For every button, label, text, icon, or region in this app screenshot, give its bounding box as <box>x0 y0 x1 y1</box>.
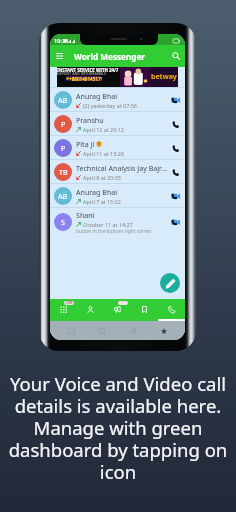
button[interactable]: Contacts <box>77 299 104 321</box>
staticText: April 12 at 20:12 <box>83 126 124 133</box>
button[interactable]: P <box>50 112 185 136</box>
button[interactable]: Saved <box>131 299 158 321</box>
staticText: Pita Ji <box>76 139 95 149</box>
staticText: 10:29 <box>54 37 69 45</box>
staticText: AB <box>58 95 68 105</box>
button[interactable]: Search <box>167 45 185 67</box>
staticText: April 7 at 15:22 <box>83 198 121 205</box>
staticText: P <box>61 119 66 129</box>
staticText: April 8 at 20:33 <box>83 174 121 181</box>
button[interactable]: Video call <box>168 186 182 206</box>
button[interactable]: Open navigation menu <box>50 45 68 67</box>
staticText: Shani <box>76 210 95 220</box>
staticText: (2) yesterday at 07:56 <box>83 102 137 109</box>
staticText: INSTANT SERVICE WITH 24/7 <box>57 67 119 73</box>
button[interactable]: New chat <box>160 273 180 293</box>
staticText: S <box>61 217 65 227</box>
staticText: Pranshu <box>76 115 104 125</box>
staticText: Anurag Bhai <box>76 91 118 101</box>
button[interactable]: Voice call <box>168 138 182 158</box>
staticText: +8801401451711 <box>69 76 102 81</box>
staticText: April 11 at 13:29 <box>83 150 124 157</box>
staticText: October 11 at 14:27 <box>83 221 133 228</box>
button[interactable]: Apps <box>50 299 77 321</box>
staticText: World Messenger <box>74 51 146 62</box>
staticText: betway <box>151 72 177 82</box>
button[interactable]: Channels <box>104 299 131 321</box>
staticText: +999 <box>65 301 73 305</box>
button[interactable]: AB <box>50 184 185 208</box>
staticText: AB <box>58 191 68 201</box>
button[interactable]: Calls <box>158 299 185 321</box>
staticText: DEPOSIT AND WITHDRAWALS <box>57 71 106 76</box>
button[interactable]: P <box>50 136 185 160</box>
staticText: Your Voice and Video call details is ava… <box>1 371 235 485</box>
button[interactable]: Voice call <box>168 162 182 182</box>
staticText: P <box>61 143 66 153</box>
button[interactable]: AB <box>50 88 185 112</box>
staticText: Technical Analysis Jay Bajran… <box>76 163 168 173</box>
button[interactable]: Video call <box>168 90 182 110</box>
staticText: TB <box>59 167 68 177</box>
button[interactable]: Video call <box>168 212 182 232</box>
button[interactable]: Voice call <box>168 114 182 134</box>
button[interactable]: S <box>50 208 185 236</box>
button[interactable]: TB <box>50 160 185 184</box>
staticText: button in the bottom right corner <box>76 228 152 235</box>
staticText: Anurag Bhai <box>76 187 118 197</box>
